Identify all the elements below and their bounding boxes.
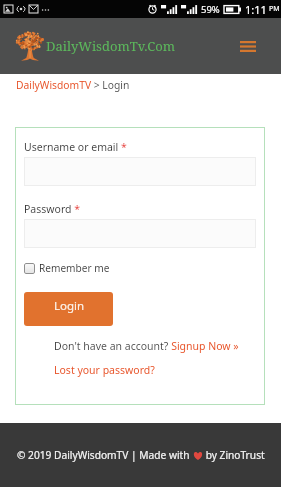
staticText: by ZinoTrust xyxy=(203,448,265,462)
button[interactable]: Lost your password? xyxy=(54,363,155,377)
staticText: Username or email * xyxy=(24,140,127,154)
button[interactable] xyxy=(24,157,256,186)
button[interactable]: Login xyxy=(24,292,113,326)
staticText: PM xyxy=(269,4,280,14)
staticText: Remember me xyxy=(39,261,110,275)
staticText: © 2019 DailyWisdomTV | Made with xyxy=(17,448,193,462)
staticText: DailyWisdomTV > Login xyxy=(16,78,130,92)
staticText: 1:11 xyxy=(245,2,267,17)
staticText: 59% xyxy=(201,3,220,16)
button[interactable] xyxy=(24,219,256,248)
staticText: Login xyxy=(54,298,85,314)
staticText: Password * xyxy=(24,202,81,216)
button[interactable]: Don't have an account? Signup Now » xyxy=(54,339,239,353)
button[interactable]: Menu xyxy=(234,32,262,60)
staticText: DailyWisdomTv.Com xyxy=(46,37,176,55)
button[interactable]: Remember me xyxy=(24,261,110,275)
